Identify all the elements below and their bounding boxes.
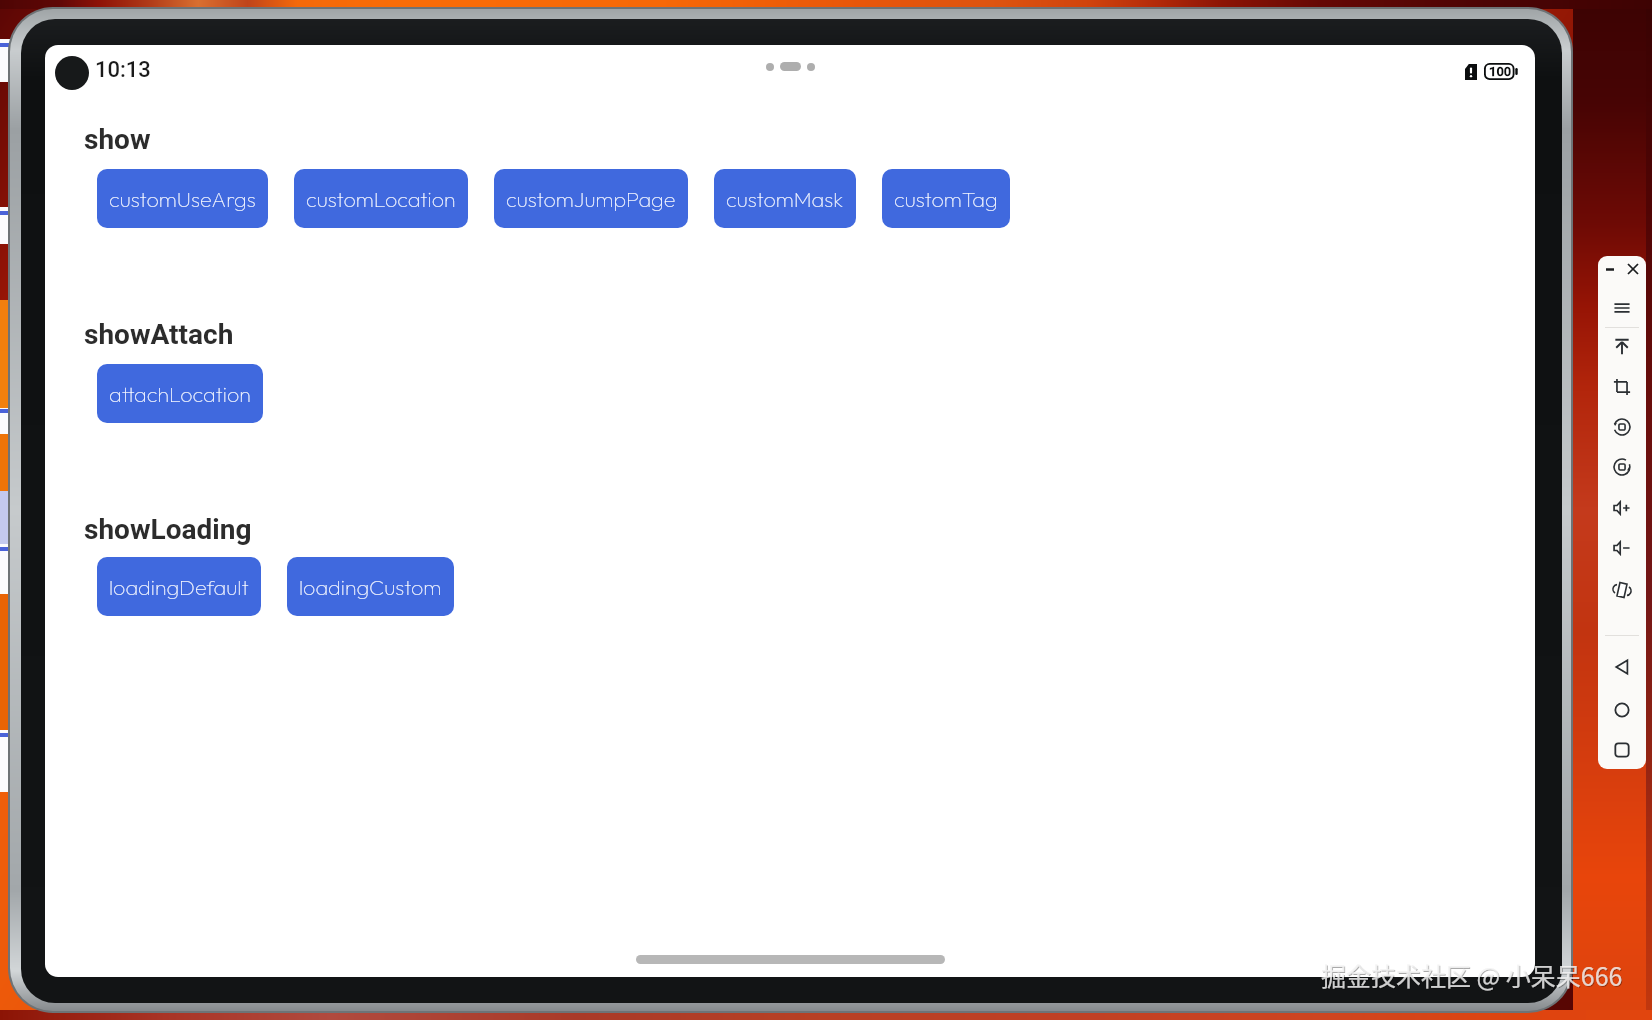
staticText: 掘金技术社区 @ 小呆呆666 xyxy=(1321,957,1623,993)
staticText: loadingCustom xyxy=(299,573,442,600)
button[interactable]: Screenshot xyxy=(1608,373,1636,401)
button[interactable]: customTag xyxy=(882,169,1010,228)
staticText: attachLocation xyxy=(109,380,251,407)
button[interactable]: Home xyxy=(1608,696,1636,724)
staticText: customJumpPage xyxy=(506,185,676,212)
staticText: customMask xyxy=(726,185,844,212)
button[interactable]: loadingDefault xyxy=(97,557,261,616)
button[interactable]: customLocation xyxy=(294,169,468,228)
staticText: 10:13 xyxy=(95,57,151,83)
button[interactable]: attachLocation xyxy=(97,364,263,423)
staticText: customUseArgs xyxy=(109,185,256,212)
button[interactable]: Upload to device xyxy=(1608,333,1636,361)
staticText: show xyxy=(84,123,151,156)
button[interactable]: Volume up xyxy=(1608,494,1636,522)
button[interactable]: Rotate screen xyxy=(1608,576,1636,604)
button[interactable]: Menu xyxy=(1608,294,1636,322)
button[interactable]: Close xyxy=(1624,260,1642,278)
button[interactable]: Rotate right xyxy=(1608,453,1636,481)
button[interactable]: customJumpPage xyxy=(494,169,688,228)
staticText: showAttach xyxy=(84,318,234,351)
button[interactable]: customUseArgs xyxy=(97,169,268,228)
button[interactable]: customMask xyxy=(714,169,856,228)
button[interactable]: Rotate left xyxy=(1608,413,1636,441)
staticText: 100 xyxy=(1489,64,1512,79)
button[interactable]: Volume down xyxy=(1608,534,1636,562)
staticText: customTag xyxy=(894,185,998,212)
button[interactable]: Recent apps xyxy=(1608,736,1636,764)
staticText: showLoading xyxy=(84,513,252,546)
button[interactable]: Back xyxy=(1608,653,1636,681)
staticText: loadingDefault xyxy=(109,573,249,600)
staticText: 掘金技术社区 @ 小呆呆666 xyxy=(1322,958,1624,994)
button[interactable]: loadingCustom xyxy=(287,557,454,616)
button[interactable]: Minimize xyxy=(1601,260,1619,278)
staticText: customLocation xyxy=(306,185,456,212)
